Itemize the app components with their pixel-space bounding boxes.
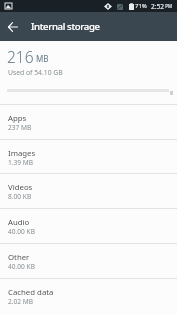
- staticText: Apps: [8, 113, 27, 124]
- staticText: 8.00 KB: [8, 192, 32, 201]
- button[interactable]: Other: [0, 243, 177, 278]
- staticText: 40.00 KB: [8, 227, 35, 236]
- staticText: 2.02 MB: [8, 297, 34, 306]
- staticText: Audio: [8, 217, 30, 228]
- staticText: 40.00 KB: [8, 262, 35, 271]
- staticText: 237 MB: [8, 123, 32, 132]
- staticText: 216: [7, 46, 34, 67]
- button[interactable]: Cached data: [0, 278, 177, 313]
- staticText: Videos: [8, 182, 33, 193]
- staticText: 2:52: [151, 2, 164, 11]
- staticText: MB: [36, 53, 49, 64]
- button[interactable]: Audio: [0, 208, 177, 243]
- staticText: Used of 54.10 GB: [8, 68, 63, 77]
- staticText: Images: [8, 148, 36, 159]
- staticText: Internal storage: [31, 20, 100, 33]
- staticText: PM: [164, 3, 172, 9]
- staticText: 1.39 MB: [8, 158, 34, 167]
- staticText: 71%: [135, 2, 147, 10]
- staticText: Other: [8, 252, 30, 263]
- button[interactable]: Videos: [0, 173, 177, 208]
- button[interactable]: Apps: [0, 104, 177, 139]
- button[interactable]: [3, 18, 22, 36]
- staticText: Cached data: [8, 287, 54, 298]
- button[interactable]: Images: [0, 139, 177, 174]
